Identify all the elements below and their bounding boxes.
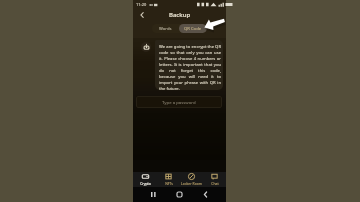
button[interactable]: Home (174, 189, 185, 200)
staticText: Chat (211, 181, 219, 186)
button[interactable]: Recents (148, 189, 159, 200)
staticText: We are going to encrypt the QR code so t… (159, 44, 221, 90)
button[interactable]: Locker Room (180, 172, 203, 187)
staticText: Words (159, 26, 172, 32)
staticText: Backup (169, 11, 191, 19)
button[interactable]: QR Code (179, 24, 207, 33)
button[interactable]: Back (200, 189, 211, 200)
staticText: Crypto (140, 181, 151, 186)
staticText: 11:20 (136, 2, 147, 7)
button[interactable]: Crypto (133, 172, 157, 187)
button[interactable]: Chat (203, 172, 226, 187)
staticText: Locker Room (181, 181, 202, 186)
button[interactable]: Words (152, 24, 179, 33)
staticText: Type a password (162, 99, 196, 105)
staticText: NFTs (165, 181, 173, 186)
button[interactable]: NFTs (157, 172, 180, 187)
button[interactable]: Back (136, 9, 147, 20)
staticText: QR Code (184, 26, 202, 32)
button[interactable]: Type a password (136, 96, 222, 108)
